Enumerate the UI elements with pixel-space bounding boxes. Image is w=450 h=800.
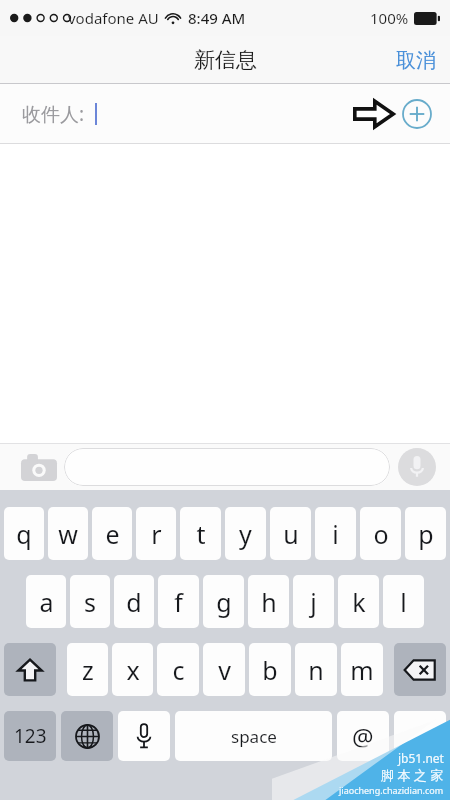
button[interactable]: c <box>157 643 199 696</box>
button[interactable]: q <box>4 507 44 560</box>
staticText: f <box>174 585 183 619</box>
staticText: x <box>126 653 140 687</box>
button[interactable]: n <box>295 643 337 696</box>
button[interactable]: b <box>249 643 291 696</box>
button[interactable]: Shift <box>4 643 56 696</box>
staticText: z <box>82 653 94 687</box>
staticText: n <box>308 653 324 687</box>
staticText: q <box>16 517 32 551</box>
other: Annotation arrow <box>354 98 394 130</box>
button[interactable]: l <box>383 575 424 628</box>
staticText: space <box>231 725 277 748</box>
staticText: 100% <box>370 8 409 28</box>
button[interactable]: Dictate <box>398 448 436 486</box>
button[interactable] <box>64 448 390 486</box>
staticText: vodafone AU <box>68 8 159 28</box>
button[interactable]: 123 <box>4 711 56 761</box>
staticText: 取消 <box>396 48 436 73</box>
button[interactable]: p <box>405 507 446 560</box>
button[interactable]: Backspace <box>394 643 446 696</box>
staticText: . <box>417 721 423 751</box>
button[interactable]: z <box>67 643 108 696</box>
staticText: k <box>352 585 366 619</box>
staticText: j <box>310 585 317 619</box>
staticText: s <box>84 585 96 619</box>
button[interactable]: . <box>394 711 446 761</box>
staticText: c <box>172 653 185 687</box>
button[interactable]: o <box>360 507 401 560</box>
staticText: h <box>261 585 277 619</box>
button[interactable]: v <box>203 643 245 696</box>
staticText: e <box>105 517 120 551</box>
button[interactable]: g <box>203 575 244 628</box>
button[interactable]: m <box>341 643 383 696</box>
staticText: p <box>418 517 434 551</box>
button[interactable]: k <box>338 575 379 628</box>
button[interactable]: j <box>293 575 334 628</box>
staticText: i <box>332 517 339 551</box>
button[interactable]: x <box>112 643 153 696</box>
staticText: d <box>126 585 142 619</box>
button[interactable]: u <box>270 507 311 560</box>
staticText: t <box>196 517 206 551</box>
staticText: o <box>373 517 389 551</box>
staticText: 8:49 AM <box>188 8 246 28</box>
button[interactable]: s <box>70 575 110 628</box>
button[interactable]: d <box>114 575 154 628</box>
staticText: r <box>151 517 162 551</box>
staticText: m <box>350 653 374 687</box>
staticText: jb51.net <box>398 750 444 766</box>
staticText: 新信息 <box>194 47 257 73</box>
button[interactable]: Dictation <box>118 711 170 761</box>
staticText: b <box>262 653 278 687</box>
staticText: y <box>239 517 252 551</box>
button[interactable]: t <box>180 507 221 560</box>
button[interactable]: Add contact <box>400 97 434 131</box>
button[interactable]: Camera <box>18 446 60 488</box>
staticText: g <box>216 585 232 619</box>
button[interactable]: e <box>92 507 132 560</box>
staticText: jiaocheng.chazidian.com <box>339 784 444 796</box>
button[interactable]: y <box>225 507 266 560</box>
staticText: w <box>58 517 78 551</box>
staticText: l <box>400 585 407 619</box>
staticText: u <box>283 517 299 551</box>
button[interactable]: h <box>248 575 289 628</box>
staticText: @ <box>352 720 374 753</box>
button[interactable]: f <box>158 575 199 628</box>
button[interactable]: r <box>136 507 176 560</box>
staticText: a <box>39 585 54 619</box>
staticText: v <box>218 653 231 687</box>
staticText: 收件人: <box>22 101 85 127</box>
button[interactable]: w <box>48 507 88 560</box>
button[interactable]: space <box>175 711 332 761</box>
button[interactable]: 取消 <box>382 38 450 83</box>
button[interactable]: a <box>26 575 66 628</box>
button[interactable]: Switch keyboard <box>61 711 113 761</box>
button[interactable]: i <box>315 507 356 560</box>
staticText: 脚 本 之 家 <box>381 766 444 784</box>
staticText: 123 <box>14 723 47 749</box>
button[interactable]: @ <box>337 711 389 761</box>
